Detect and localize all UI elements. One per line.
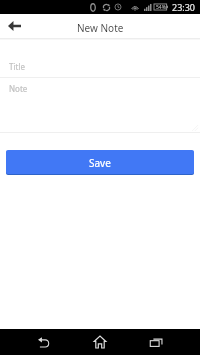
staticText: 23:30	[172, 1, 196, 13]
button[interactable]: Back	[32, 330, 56, 354]
staticText: 54%	[156, 4, 166, 11]
button[interactable]: Recent apps	[144, 330, 168, 354]
staticText: Note	[9, 83, 28, 94]
staticText: New Note	[77, 21, 124, 35]
button[interactable]: Title	[0, 52, 200, 78]
button[interactable]: Back	[0, 14, 29, 38]
staticText: Title	[9, 61, 25, 72]
staticText: Save	[89, 156, 111, 170]
button[interactable]: Note	[0, 78, 200, 133]
button[interactable]: Save	[6, 150, 194, 174]
button[interactable]: Home	[88, 330, 112, 354]
